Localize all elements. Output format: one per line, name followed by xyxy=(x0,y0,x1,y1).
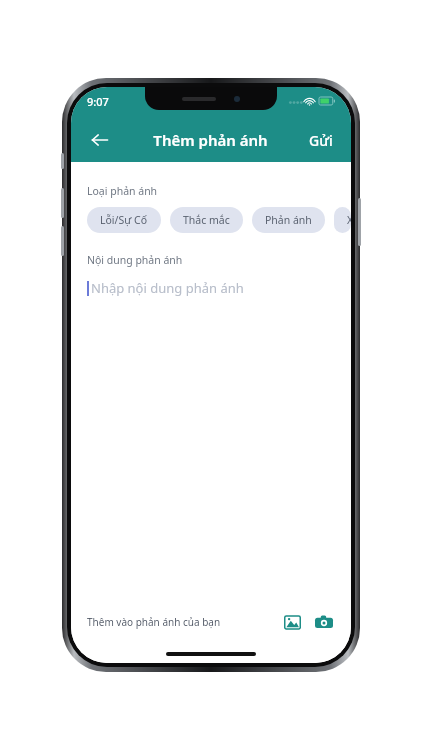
button[interactable]: Gửi xyxy=(303,125,339,156)
staticText: Thắc mắc xyxy=(183,213,230,227)
button[interactable]: Back xyxy=(83,123,117,157)
button[interactable]: Lỗi/Sự Cố xyxy=(87,207,161,233)
staticText: Loại phản ánh xyxy=(87,184,158,198)
staticText: Thêm phản ánh xyxy=(153,130,268,150)
staticText: Gửi xyxy=(309,131,333,150)
button[interactable]: Nhập nội dung phản ánh xyxy=(87,279,351,297)
button[interactable]: Xin ng xyxy=(334,207,351,233)
staticText: Nhập nội dung phản ánh xyxy=(91,279,244,297)
button[interactable]: Add image xyxy=(281,611,303,633)
staticText: Lỗi/Sự Cố xyxy=(100,213,148,227)
staticText: Phản ánh xyxy=(265,213,312,227)
staticText: Thêm vào phản ánh của bạn xyxy=(87,615,221,629)
staticText: 9:07 xyxy=(87,94,109,109)
staticText: Nội dung phản ánh xyxy=(87,253,183,267)
button[interactable]: Thắc mắc xyxy=(170,207,243,233)
button[interactable]: Phản ánh xyxy=(252,207,325,233)
button[interactable]: Take photo xyxy=(313,611,335,633)
